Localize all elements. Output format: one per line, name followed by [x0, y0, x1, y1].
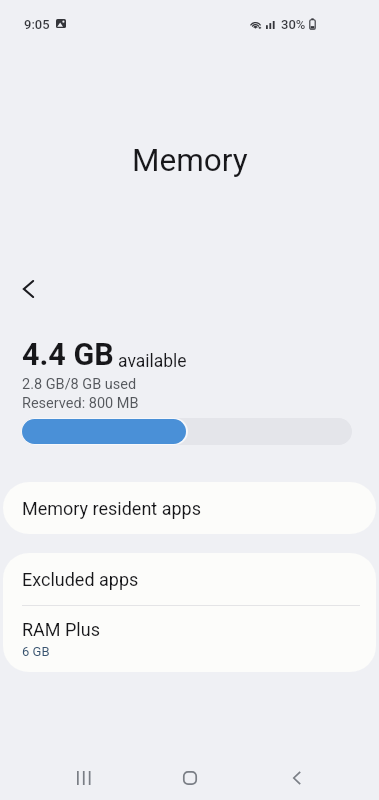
button[interactable]: Navigate up: [4, 265, 52, 313]
staticText: 2.8 GB/8 GB used: [22, 376, 137, 393]
button[interactable]: Home: [166, 754, 214, 800]
staticText: Memory: [132, 142, 248, 179]
staticText: Reserved: 800 MB: [22, 395, 139, 412]
button[interactable]: Excluded apps: [3, 553, 376, 605]
staticText: 9:05: [24, 17, 50, 32]
button[interactable]: RAM Plus: [3, 606, 376, 672]
staticText: 6 GB: [22, 644, 50, 659]
button[interactable]: Back: [273, 754, 321, 800]
staticText: 4.4 GB: [22, 337, 114, 373]
staticText: Excluded apps: [22, 569, 139, 590]
staticText: available: [118, 351, 187, 372]
staticText: Memory resident apps: [22, 498, 201, 519]
staticText: RAM Plus: [22, 619, 100, 640]
staticText: 30%: [281, 17, 306, 32]
button[interactable]: Recent apps: [60, 754, 108, 800]
button[interactable]: Memory resident apps: [3, 482, 376, 534]
